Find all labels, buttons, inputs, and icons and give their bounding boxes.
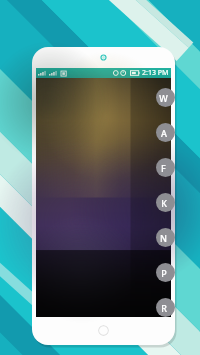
button[interactable]: Home [98,325,109,336]
staticText: A [161,127,167,139]
button[interactable]: W [156,88,175,107]
staticText: K [161,197,167,209]
staticText: R [161,302,167,314]
button[interactable]: A [156,123,175,142]
button[interactable]: F [156,158,175,177]
button[interactable]: P [156,263,175,282]
staticText: 2:13 PM [142,68,169,78]
staticText: F [161,162,166,174]
button[interactable]: R [156,298,175,317]
staticText: W [159,92,168,104]
staticText: N [160,232,167,244]
button[interactable]: K [156,193,175,212]
staticText: P [161,267,167,279]
button[interactable]: N [156,228,175,247]
